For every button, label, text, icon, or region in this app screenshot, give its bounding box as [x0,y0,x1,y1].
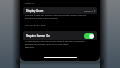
staticText: Default [84,9,93,12]
staticText: Choose a view for iPhone. Zoomed shows l… [25,14,87,20]
staticText: Require Screen On [26,34,50,38]
button[interactable]: Display Zoom [23,7,97,14]
staticText: Automatically lock the screen after a pe… [25,40,86,49]
staticText: DISPLAY [25,2,35,5]
button[interactable]: Require Screen On toggle [84,33,94,39]
staticText: AUTO-LOCK TIME [25,24,46,27]
staticText: Display Zoom [26,9,44,13]
button[interactable]: Require Screen On [23,31,97,40]
